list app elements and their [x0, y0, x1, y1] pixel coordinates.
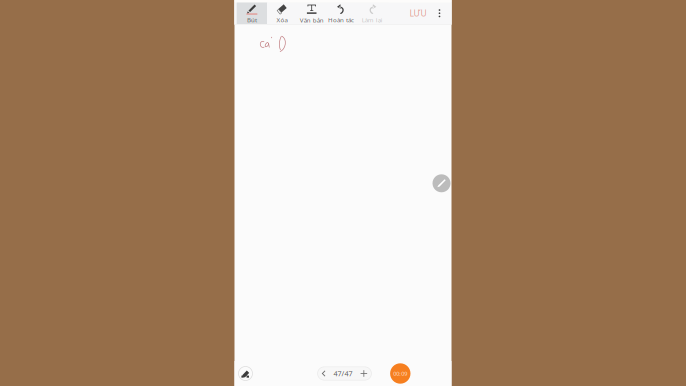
button[interactable]: Hoàn tác	[326, 2, 356, 24]
staticText: Làm lại	[362, 16, 383, 24]
button[interactable]: Drawing tools	[432, 174, 450, 192]
button[interactable]: More options	[433, 2, 446, 24]
staticText: 00:09	[393, 370, 407, 377]
staticText: Xóa	[276, 16, 287, 24]
staticText: LƯU	[409, 7, 426, 19]
staticText: Văn bản	[300, 16, 324, 24]
button[interactable]: 00:09	[390, 363, 410, 384]
button[interactable]: Pen settings	[238, 366, 252, 380]
staticText: Bút	[247, 16, 257, 24]
button[interactable]: Làm lại	[356, 2, 389, 24]
staticText: 47/47	[334, 369, 353, 378]
button[interactable]: Văn bản	[297, 2, 326, 24]
button[interactable]: 47/47	[318, 367, 371, 380]
button[interactable]: Bút	[237, 2, 267, 24]
button[interactable]: Xóa	[267, 2, 297, 24]
button[interactable]: LƯU	[406, 2, 430, 24]
staticText: Hoàn tác	[328, 16, 354, 24]
